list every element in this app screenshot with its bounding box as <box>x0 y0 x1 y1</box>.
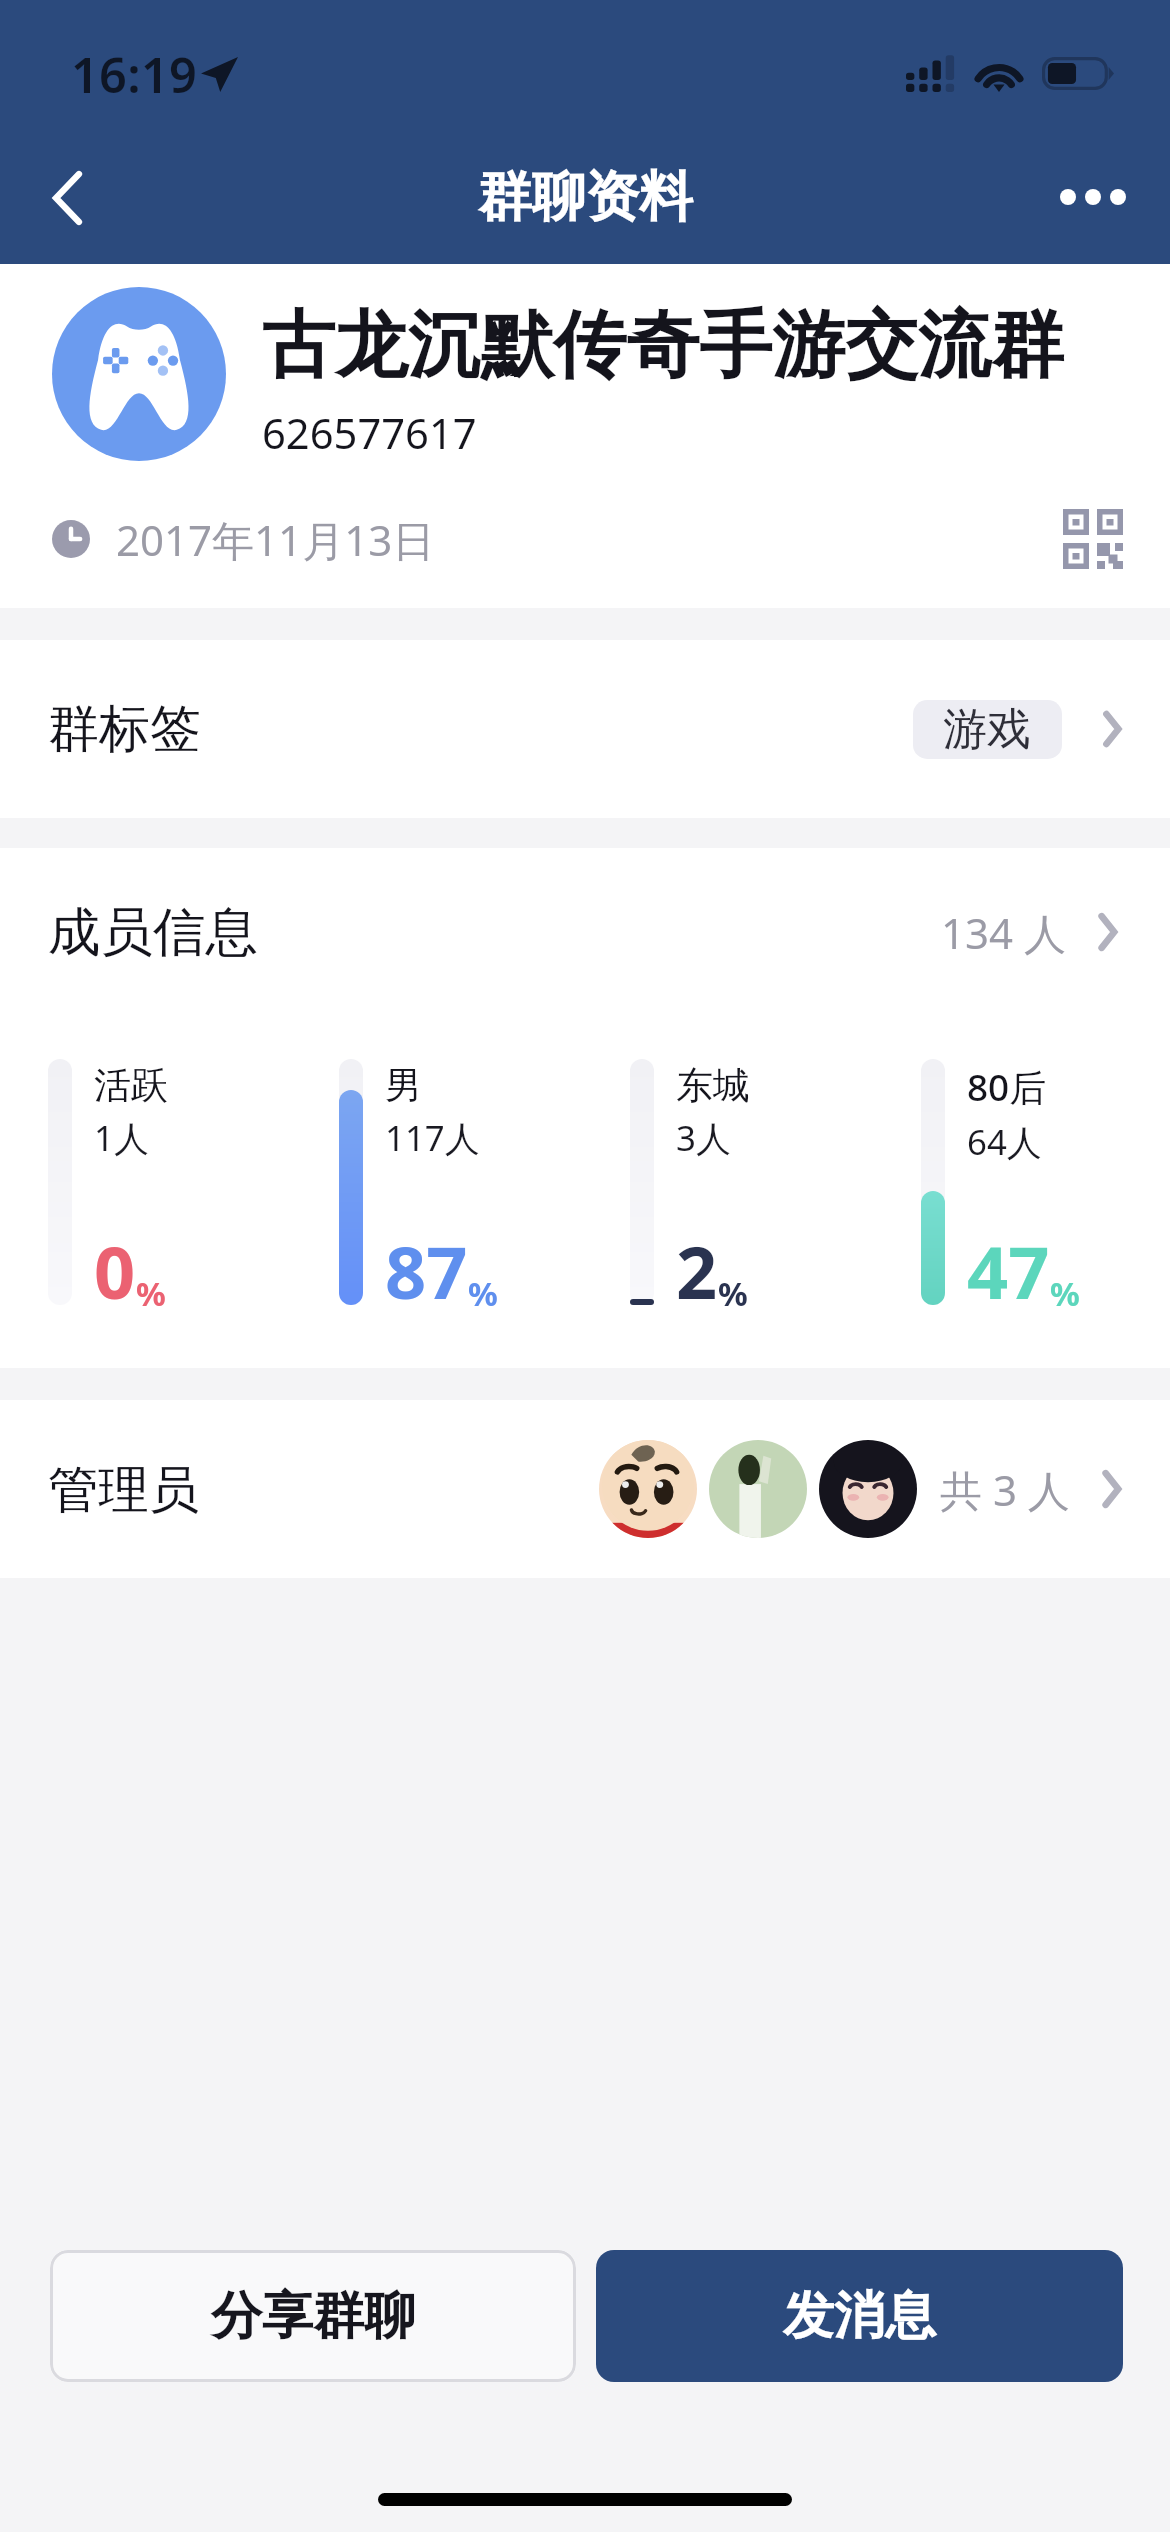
staticText: 男 <box>385 1062 422 1108</box>
staticText: 古龙沉默传奇手游交流群 <box>262 300 1064 392</box>
staticText: 117人 <box>385 1114 480 1162</box>
staticText: 47 <box>967 1222 1050 1320</box>
staticText: 游戏 <box>943 702 1032 758</box>
staticText: % <box>468 1271 498 1316</box>
button[interactable]: QR code <box>1063 509 1123 569</box>
button[interactable]: 管理员 <box>0 1400 1170 1578</box>
staticText: % <box>136 1271 166 1316</box>
button[interactable]: 发消息 <box>596 2250 1123 2382</box>
staticText: % <box>718 1271 748 1316</box>
staticText: 2017年11月13日 <box>116 511 435 568</box>
staticText: 群聊资料 <box>478 163 693 231</box>
staticText: 分享群聊 <box>211 2284 415 2348</box>
staticText: 1人 <box>94 1114 149 1162</box>
staticText: 东城 <box>676 1062 750 1108</box>
staticText: 0 <box>94 1222 136 1320</box>
staticText: 共 3 人 <box>940 1461 1070 1518</box>
button[interactable]: Back <box>0 146 150 264</box>
staticText: 3人 <box>676 1114 731 1162</box>
staticText: 16:19 <box>71 41 198 107</box>
button[interactable]: 成员信息 <box>0 848 1170 1016</box>
button[interactable]: More options <box>1020 146 1170 264</box>
staticText: 134 人 <box>941 904 1066 961</box>
staticText: 发消息 <box>783 2284 936 2348</box>
staticText: 群标签 <box>48 697 201 761</box>
staticText: 活跃 <box>94 1062 168 1108</box>
staticText: 成员信息 <box>48 899 258 965</box>
button[interactable]: 分享群聊 <box>50 2250 576 2382</box>
staticText: 管理员 <box>48 1458 200 1521</box>
staticText: 80后 <box>967 1062 1047 1112</box>
staticText: % <box>1050 1271 1080 1316</box>
staticText: 2 <box>676 1222 718 1320</box>
button[interactable]: 群标签 <box>0 640 1170 818</box>
staticText: 64人 <box>967 1118 1042 1166</box>
staticText: 626577617 <box>262 404 477 461</box>
staticText: 87 <box>385 1222 468 1320</box>
